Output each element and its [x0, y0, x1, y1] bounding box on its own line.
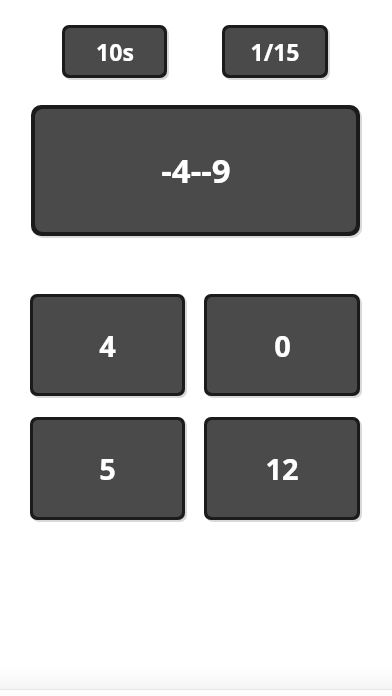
staticText: 5: [99, 449, 116, 488]
button[interactable]: 0: [204, 294, 360, 396]
button[interactable]: -4--9: [31, 105, 360, 236]
button[interactable]: 4: [30, 294, 185, 396]
button[interactable]: 1/15: [222, 25, 328, 78]
staticText: 0: [274, 326, 291, 365]
button[interactable]: 10s: [62, 25, 167, 78]
button[interactable]: 5: [30, 417, 185, 520]
staticText: -4--9: [161, 148, 231, 193]
staticText: 4: [99, 326, 116, 365]
button[interactable]: 12: [204, 417, 360, 520]
staticText: 1/15: [250, 36, 300, 67]
staticText: 10s: [96, 36, 134, 67]
staticText: 12: [265, 449, 299, 488]
